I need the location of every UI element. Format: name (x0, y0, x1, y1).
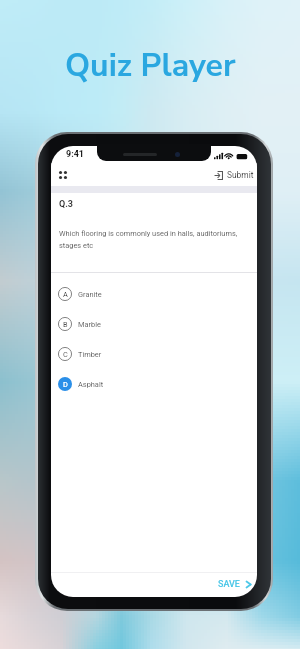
staticText: Which flooring is commonly used in halls… (59, 229, 241, 250)
staticText: A (63, 290, 68, 299)
staticText: C (63, 350, 68, 359)
staticText: Asphalt (78, 380, 104, 389)
button[interactable]: A (51, 279, 257, 309)
staticText: SAVE (218, 579, 240, 590)
staticText: Quiz Player (65, 44, 236, 88)
staticText: Submit (227, 170, 254, 180)
button[interactable]: B (51, 309, 257, 339)
staticText: Q.3 (59, 199, 73, 210)
staticText: Granite (78, 290, 102, 299)
staticText: B (63, 320, 68, 329)
other: Next (244, 580, 253, 589)
staticText: Marble (78, 320, 101, 329)
button[interactable]: D (51, 369, 257, 399)
staticText: 9:41 (66, 149, 85, 160)
button[interactable]: C (51, 339, 257, 369)
button[interactable]: Question grid (53, 165, 73, 185)
button[interactable]: Submit (212, 168, 256, 182)
staticText: D (63, 380, 68, 389)
button[interactable]: SAVE (212, 577, 257, 592)
staticText: Timber (78, 350, 102, 359)
